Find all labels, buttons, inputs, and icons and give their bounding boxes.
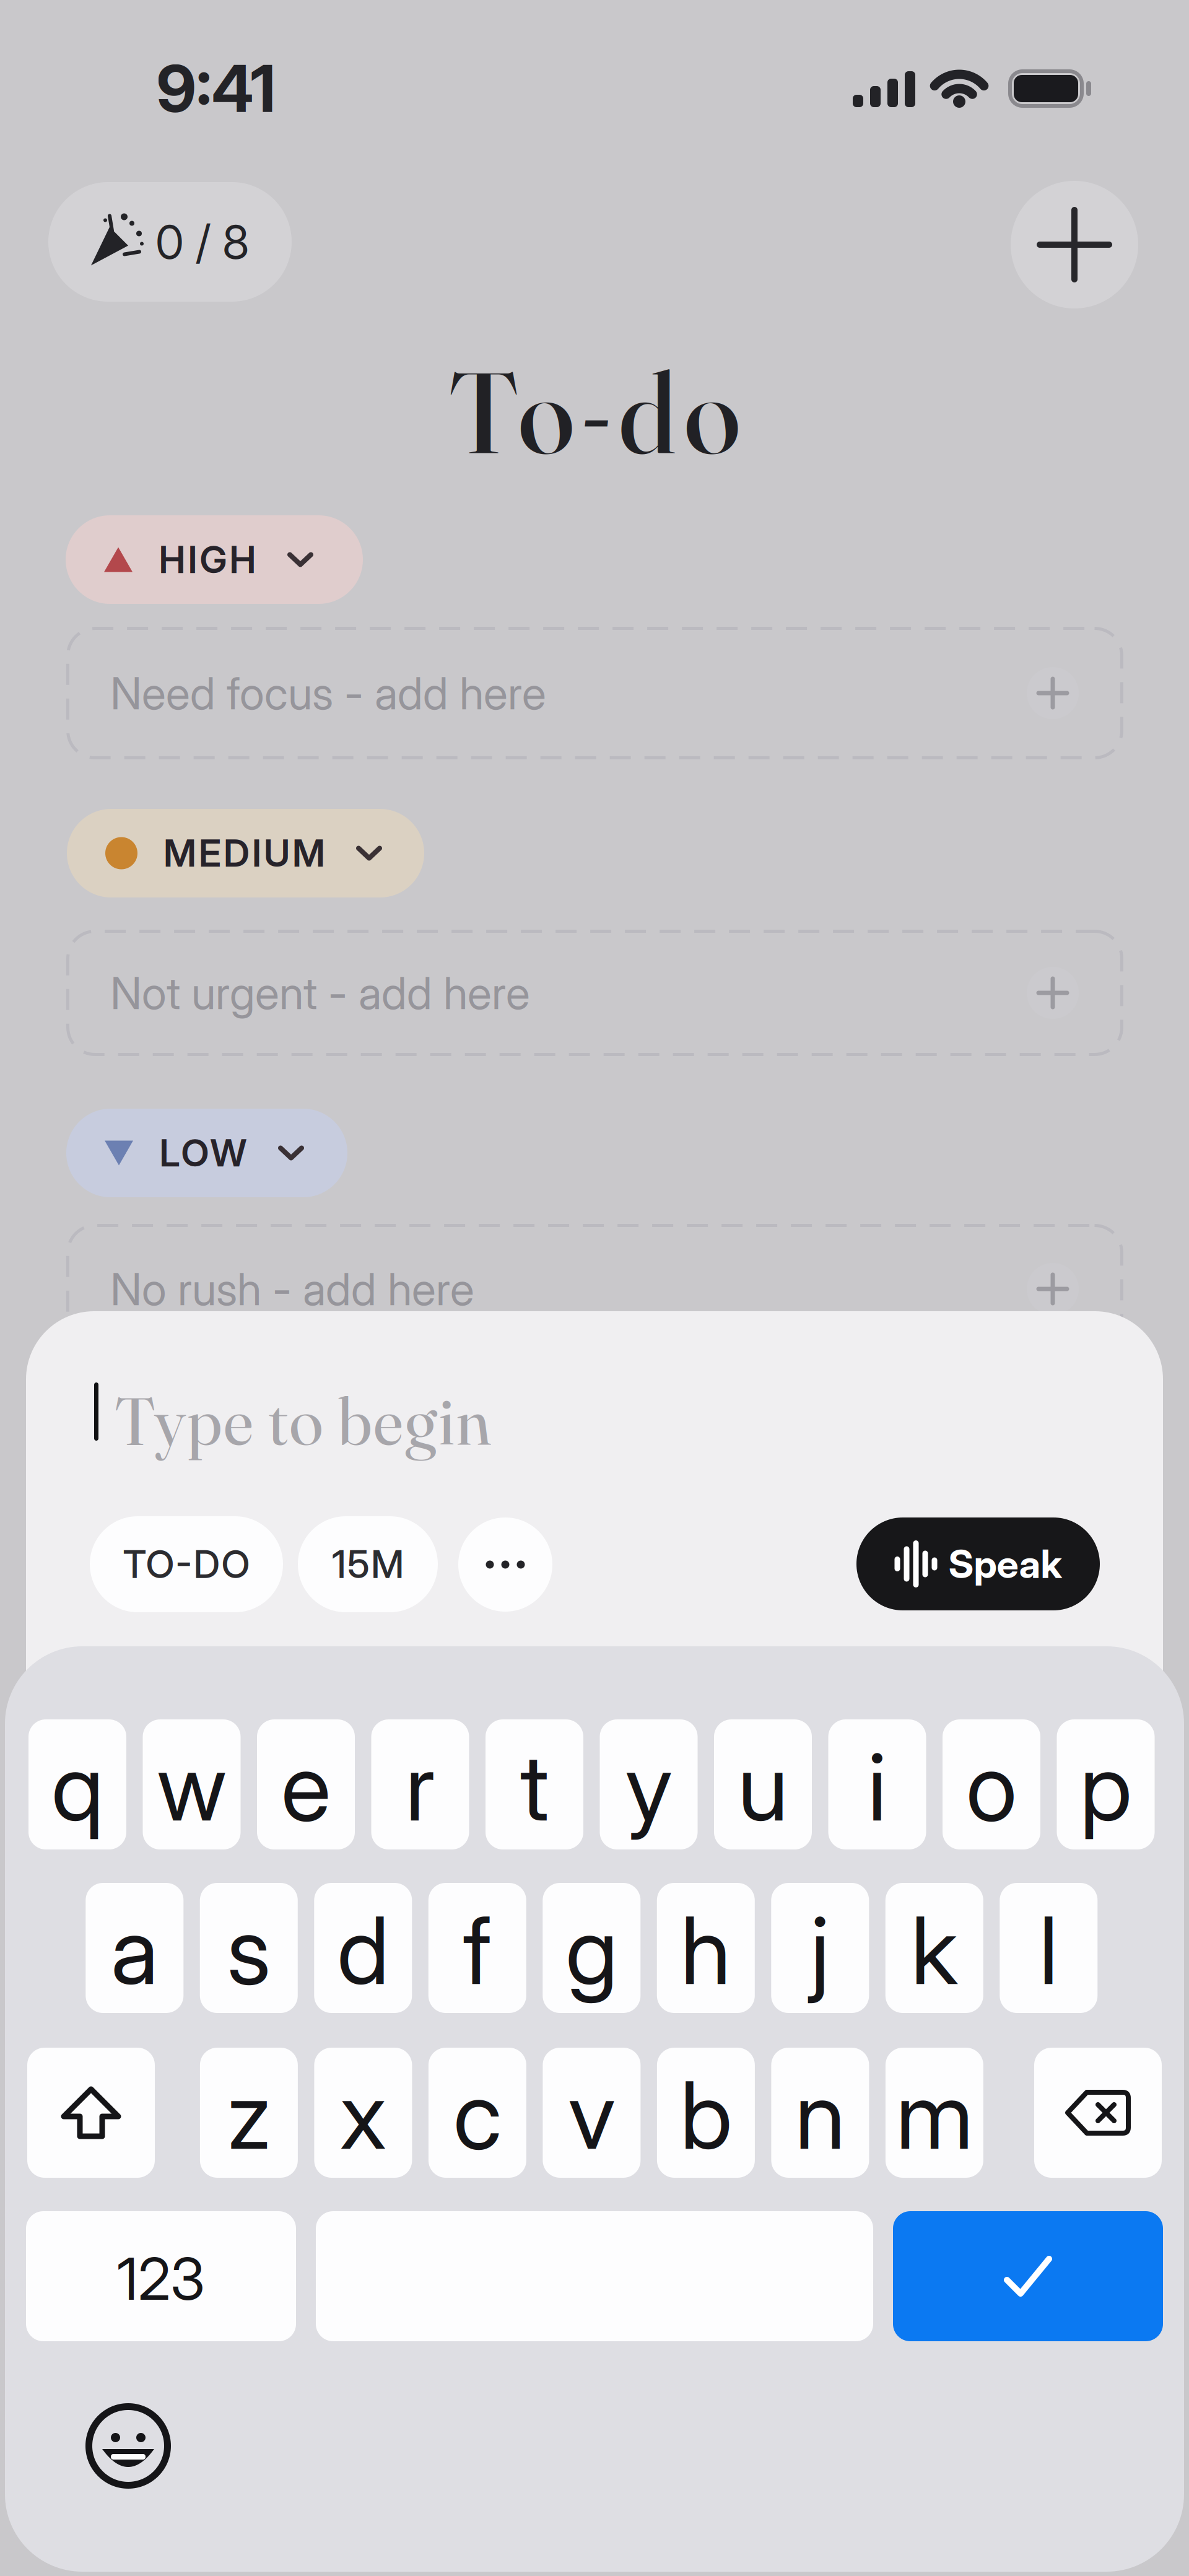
staticText: h <box>680 1896 731 2005</box>
button[interactable]: b <box>657 2048 755 2178</box>
button[interactable]: g <box>543 1883 641 2013</box>
staticText: Speak <box>948 1541 1062 1587</box>
button[interactable]: o <box>943 1719 1040 1849</box>
button[interactable]: Completed 0 of 8 <box>48 182 292 302</box>
staticText: Not urgent - add here <box>110 967 530 1019</box>
button[interactable]: x <box>314 2048 412 2178</box>
button[interactable]: HIGH <box>66 515 363 604</box>
staticText: TO-DO <box>123 1542 250 1587</box>
staticText: i <box>868 1732 887 1841</box>
staticText: v <box>568 2061 615 2170</box>
button[interactable]: s <box>200 1883 298 2013</box>
staticText: s <box>227 1896 271 2005</box>
button[interactable]: a <box>86 1883 183 2013</box>
button[interactable]: q <box>28 1719 126 1849</box>
staticText: LOW <box>159 1131 247 1175</box>
staticText: Need focus - add here <box>110 667 546 719</box>
button[interactable]: 15M <box>298 1516 438 1612</box>
button[interactable]: Not urgent - add here <box>66 930 1123 1056</box>
staticText: o <box>966 1732 1017 1841</box>
staticText: w <box>157 1732 226 1841</box>
button[interactable]: d <box>314 1883 412 2013</box>
button[interactable]: n <box>771 2048 869 2178</box>
staticText: c <box>453 2061 502 2170</box>
staticText: HIGH <box>159 538 256 582</box>
button[interactable]: y <box>600 1719 698 1849</box>
staticText: t <box>520 1732 549 1841</box>
button[interactable]: z <box>200 2048 298 2178</box>
staticText: No rush - add here <box>110 1263 474 1315</box>
staticText: 0 / 8 <box>155 215 249 269</box>
button[interactable]: p <box>1057 1719 1155 1849</box>
button[interactable]: f <box>428 1883 526 2013</box>
button[interactable]: e <box>257 1719 355 1849</box>
staticText: x <box>340 2061 387 2170</box>
button[interactable]: r <box>371 1719 469 1849</box>
button[interactable]: m <box>885 2048 983 2178</box>
staticText: d <box>337 1896 389 2005</box>
button[interactable]: Delete <box>1034 2048 1162 2178</box>
staticText: z <box>227 2061 271 2170</box>
staticText: MEDIUM <box>163 831 325 875</box>
staticText: p <box>1080 1732 1132 1841</box>
button[interactable]: i <box>828 1719 926 1849</box>
staticText: q <box>51 1732 103 1841</box>
button[interactable]: c <box>428 2048 526 2178</box>
button[interactable]: Add task <box>1011 181 1138 308</box>
button[interactable]: TO-DO <box>90 1516 283 1612</box>
staticText: n <box>795 2061 846 2170</box>
staticText: f <box>463 1896 492 2005</box>
button[interactable]: More options <box>458 1517 552 1612</box>
staticText: Type to begin <box>115 1380 491 1462</box>
button[interactable]: No rush - add here <box>66 1224 1123 1354</box>
button[interactable]: MEDIUM <box>67 809 424 897</box>
button[interactable]: k <box>885 1883 983 2013</box>
staticText: 123 <box>117 2245 205 2313</box>
button[interactable]: t <box>486 1719 583 1849</box>
button[interactable]: LOW <box>66 1109 347 1197</box>
staticText: a <box>111 1896 158 2005</box>
staticText: 15M <box>332 1542 404 1587</box>
button[interactable]: 123 <box>26 2211 296 2341</box>
button[interactable]: v <box>543 2048 641 2178</box>
button[interactable]: u <box>714 1719 812 1849</box>
button[interactable]: l <box>1000 1883 1098 2013</box>
staticText: m <box>896 2061 973 2170</box>
staticText: r <box>405 1732 435 1841</box>
staticText: g <box>566 1896 618 2005</box>
button[interactable]: w <box>143 1719 241 1849</box>
button[interactable]: Need focus - add here <box>66 627 1123 759</box>
staticText: k <box>911 1896 958 2005</box>
staticText: e <box>281 1732 331 1841</box>
staticText: u <box>738 1732 788 1841</box>
button[interactable]: Speak <box>856 1517 1100 1610</box>
staticText: To-do <box>449 342 740 482</box>
button[interactable]: Emoji <box>85 2403 171 2489</box>
button[interactable]: Done <box>893 2211 1163 2341</box>
staticText: y <box>625 1732 672 1841</box>
button[interactable]: h <box>657 1883 755 2013</box>
button[interactable]: j <box>771 1883 869 2013</box>
staticText: 9:41 <box>156 51 276 127</box>
staticText: j <box>811 1896 830 2005</box>
staticText: l <box>1039 1896 1058 2005</box>
staticText: b <box>680 2061 732 2170</box>
button[interactable]: Shift <box>27 2048 155 2178</box>
